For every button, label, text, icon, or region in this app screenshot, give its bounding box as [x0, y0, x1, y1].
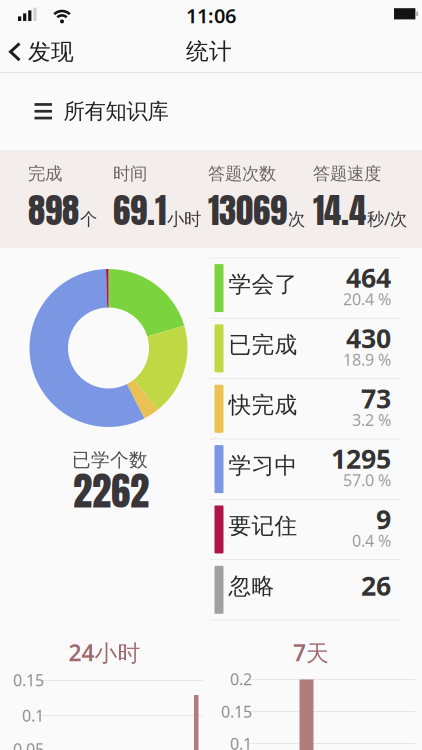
staticText: 发现 — [28, 38, 74, 66]
staticText: 24小时 — [68, 637, 140, 667]
staticText: 秒/次 — [367, 207, 407, 230]
staticText: 所有知识库 — [63, 98, 168, 124]
staticText: 0.15 — [221, 701, 252, 722]
staticText: 小时 — [167, 209, 201, 230]
button[interactable]: 所有知识库 — [0, 73, 168, 150]
staticText: 忽略 — [228, 572, 274, 600]
staticText: 26 — [361, 568, 391, 603]
staticText: 0.4 % — [352, 530, 391, 551]
staticText: 7天 — [293, 637, 329, 667]
staticText: 57.0 % — [343, 469, 391, 491]
staticText: 时间 — [113, 163, 147, 184]
staticText: 0.1 — [22, 705, 44, 726]
staticText: 20.4 % — [343, 288, 391, 310]
staticText: 个 — [80, 209, 97, 230]
staticText: 要记住 — [228, 512, 297, 540]
staticText: 1295 — [331, 441, 391, 476]
staticText: 898 — [28, 184, 79, 236]
button[interactable]: 返回 发现 — [0, 32, 74, 72]
staticText: 学习中 — [228, 452, 297, 479]
staticText: 次 — [288, 209, 305, 230]
staticText: 3.2 % — [352, 409, 391, 430]
staticText: 快完成 — [228, 391, 297, 419]
staticText: 0.15 — [13, 669, 44, 691]
staticText: 11:06 — [186, 2, 236, 29]
staticText: 答题速度 — [313, 163, 381, 184]
staticText: 学会了 — [228, 271, 297, 298]
staticText: 464 — [346, 260, 391, 295]
staticText: 完成 — [28, 163, 62, 184]
staticText: 73 — [361, 380, 391, 416]
staticText: 统计 — [186, 38, 232, 65]
staticText: 0.1 — [230, 733, 252, 750]
staticText: 18.9 % — [343, 349, 391, 370]
staticText: 已完成 — [228, 331, 297, 359]
staticText: 69.1 — [113, 184, 166, 236]
staticText: 0.2 — [230, 668, 252, 690]
staticText: 9 — [376, 501, 391, 536]
staticText: 2262 — [73, 462, 149, 520]
staticText: 13069 — [208, 184, 287, 236]
staticText: 已学个数 — [72, 448, 148, 471]
staticText: 14.4 — [313, 184, 366, 236]
staticText: 答题次数 — [208, 163, 276, 184]
staticText: 430 — [346, 320, 391, 355]
staticText: 0.05 — [13, 738, 44, 750]
